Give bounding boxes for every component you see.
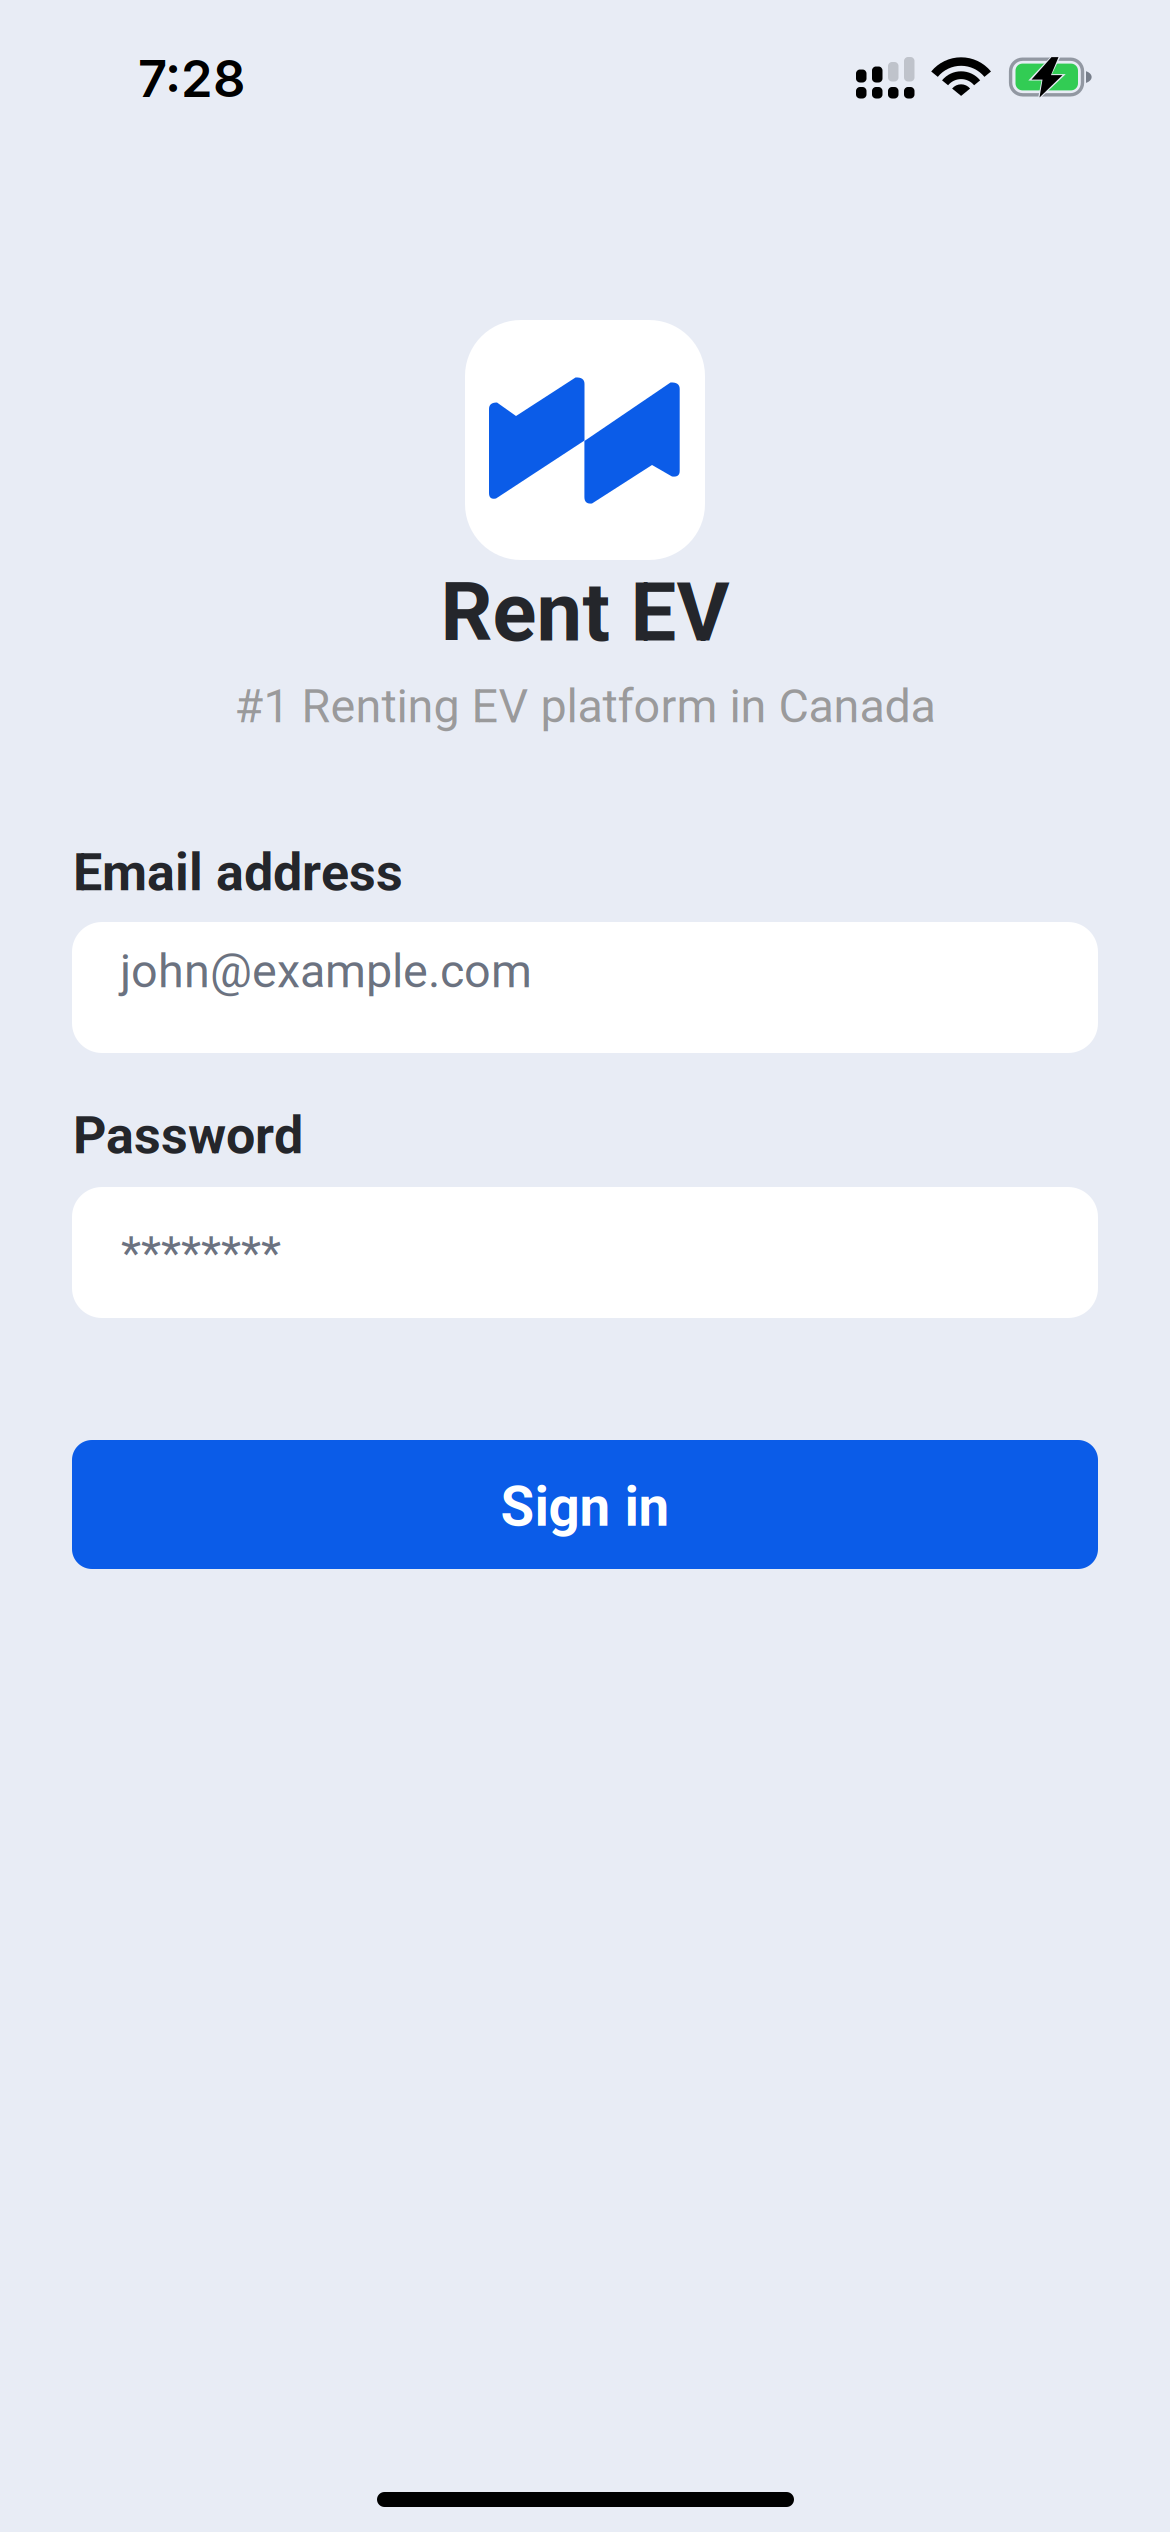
staticText: ******** [121, 1226, 281, 1281]
button[interactable]: ******** [72, 1187, 1098, 1318]
staticText: #1 Renting EV platform in Canada [234, 679, 935, 734]
staticText: Password [73, 1105, 303, 1166]
staticText: Rent EV [440, 565, 729, 660]
staticText: Email address [73, 842, 403, 903]
staticText: 7:28 [138, 48, 245, 109]
button[interactable]: john@example.com [72, 922, 1098, 1053]
staticText: Sign in [500, 1475, 669, 1539]
staticText: john@example.com [120, 944, 532, 999]
button[interactable]: Sign in [72, 1440, 1098, 1569]
